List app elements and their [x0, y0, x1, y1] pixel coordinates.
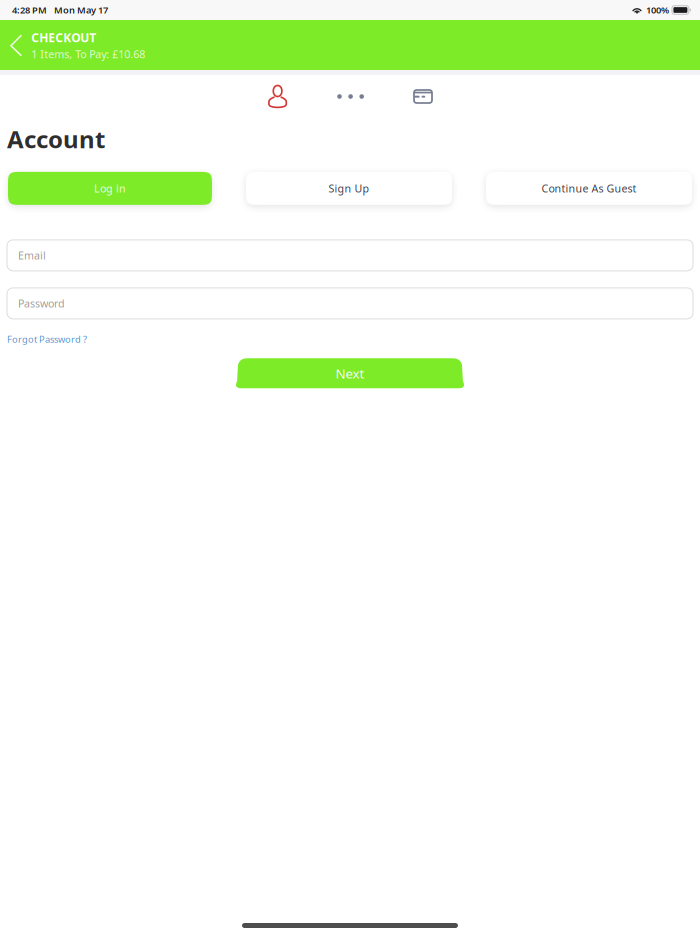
button[interactable]: Log in: [8, 172, 212, 205]
staticText: Forgot Password ?: [7, 333, 87, 345]
staticText: Sign Up: [328, 181, 369, 195]
staticText: Account: [7, 123, 105, 155]
staticText: Mon May 17: [54, 4, 108, 16]
button[interactable]: Continue As Guest: [486, 172, 692, 205]
staticText: 4:28 PM: [12, 4, 47, 16]
staticText: 100%: [646, 4, 669, 16]
staticText: CHECKOUT: [31, 30, 96, 46]
staticText: Continue As Guest: [541, 181, 636, 195]
button[interactable]: Forgot Password ?: [7, 333, 87, 345]
staticText: Log in: [94, 181, 126, 195]
button[interactable]: Sign Up: [246, 172, 452, 205]
staticText: Next: [335, 364, 364, 382]
button[interactable]: Next: [233, 358, 466, 388]
staticText: Email: [18, 248, 46, 262]
staticText: Password: [18, 296, 65, 310]
staticText: 1 Items, To Pay: £10.68: [31, 47, 145, 61]
button[interactable]: Back: [10, 34, 22, 56]
